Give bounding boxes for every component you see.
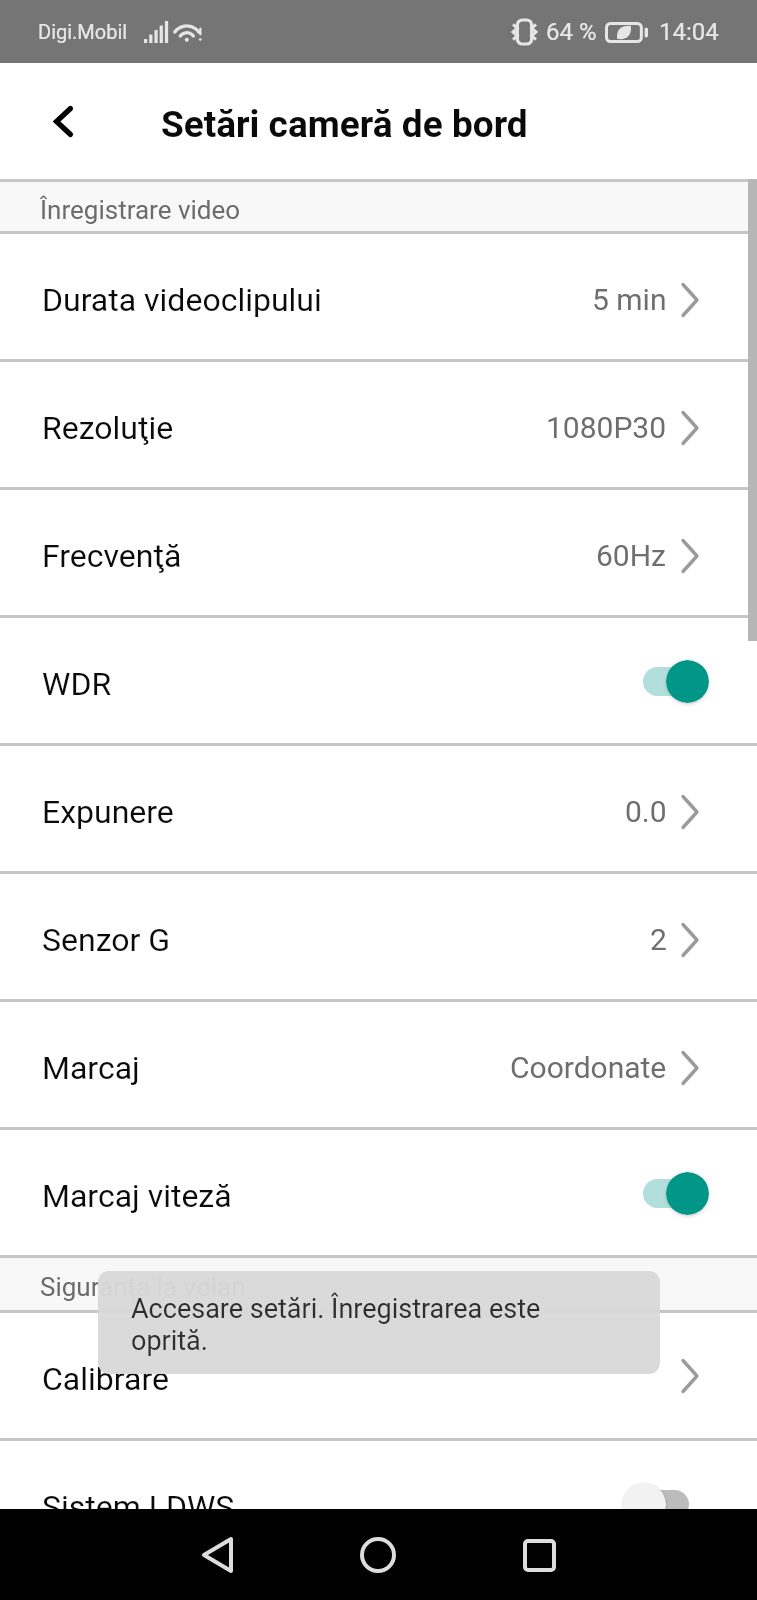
staticText: Siguranța la volan [40,1272,246,1302]
button[interactable]: Back [172,1510,262,1600]
button[interactable]: Home [333,1510,423,1600]
button[interactable]: Frecvenţă [0,490,757,615]
staticText: Marcaj [42,1049,140,1087]
staticText: 64 % [546,18,597,46]
button[interactable]: Sistem LDWS [0,1441,757,1566]
button[interactable]: Marcaj viteză [623,1169,709,1217]
button[interactable]: Expunere [0,746,757,871]
button[interactable]: Recent apps [494,1510,584,1600]
staticText: Calibrare [42,1360,169,1398]
staticText: Accesare setări. Înregistrarea este opri… [131,1293,541,1357]
staticText: 14:04 [659,18,719,46]
button[interactable]: Marcaj [0,1002,757,1127]
staticText: Frecvenţă [42,537,182,575]
staticText: Setări cameră de bord [161,103,528,146]
staticText: 60Hz [596,538,667,573]
staticText: 5 min [592,282,667,317]
staticText: Coordonate [510,1050,667,1085]
button[interactable]: Sistem LDWS [623,1480,709,1528]
staticText: 1080P30 [546,410,667,445]
staticText: 2 [650,922,667,957]
button[interactable]: Senzor G [0,874,757,999]
staticText: Rezoluţie [42,409,174,447]
staticText: Digi.Mobil [38,20,128,43]
staticText: Sistem LDWS [42,1488,235,1526]
button[interactable]: Marcaj viteză [0,1130,757,1255]
button[interactable]: Durata videoclipului [0,234,757,359]
button[interactable]: Back [22,80,104,162]
staticText: Durata videoclipului [42,281,322,319]
staticText: Expunere [42,793,174,831]
staticText: WDR [42,665,112,703]
button[interactable]: WDR [0,618,757,743]
button[interactable]: WDR [623,657,709,705]
staticText: Marcaj viteză [42,1177,232,1215]
button[interactable]: Calibrare [0,1313,757,1438]
staticText: Înregistrare video [40,195,241,225]
button[interactable]: Rezoluţie [0,362,757,487]
staticText: Senzor G [42,921,171,959]
staticText: 0.0 [625,794,667,829]
